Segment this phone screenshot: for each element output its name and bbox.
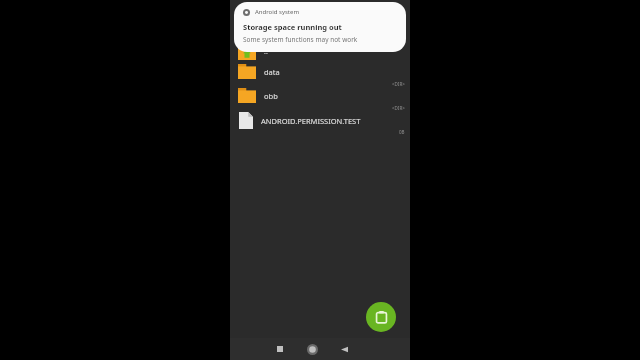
- staticText: Storage space running out: [243, 22, 342, 32]
- button[interactable]: Android system: [234, 2, 406, 52]
- button[interactable]: obb: [230, 88, 410, 112]
- button[interactable]: data: [230, 64, 410, 88]
- staticText: Android system: [255, 8, 299, 16]
- staticText: <DIR>: [392, 105, 405, 111]
- button[interactable]: Paste: [366, 302, 396, 332]
- staticText: <DIR>: [392, 81, 405, 87]
- button[interactable]: Recent apps: [270, 339, 290, 359]
- staticText: ..: [264, 47, 268, 57]
- staticText: data: [264, 67, 280, 77]
- button[interactable]: Home: [302, 339, 322, 359]
- button[interactable]: Back: [334, 339, 354, 359]
- staticText: Some system functions may not work: [243, 35, 358, 44]
- staticText: obb: [264, 91, 278, 101]
- staticText: ANDROID.PERMISSION.TEST: [261, 116, 361, 126]
- button[interactable]: ANDROID.PERMISSION.TEST: [230, 112, 410, 136]
- button[interactable]: ..: [230, 40, 410, 64]
- staticText: 0B: [399, 129, 405, 135]
